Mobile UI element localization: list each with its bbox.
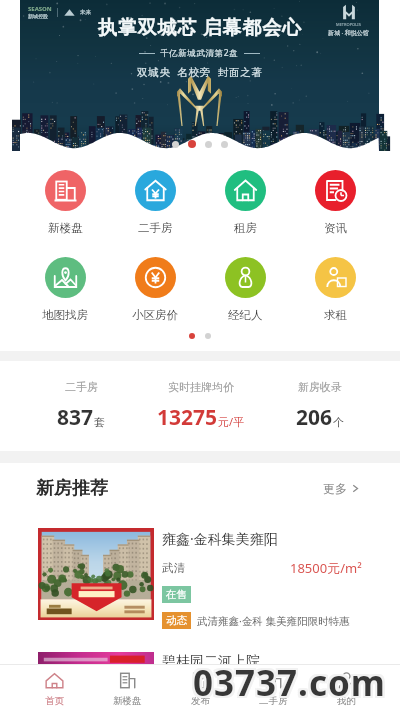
staticText: 03737.com <box>193 661 386 709</box>
staticText: 新房推荐 <box>36 477 108 500</box>
staticText: 新楼盘 <box>48 221 83 235</box>
staticText: 03737.com <box>194 658 387 706</box>
staticText: 03737.com <box>192 658 385 706</box>
staticText: 03737.com <box>195 657 388 705</box>
button[interactable]: 雍鑫·金科集美雍阳 <box>0 528 400 652</box>
staticText: 03737.com <box>191 661 384 709</box>
staticText: 求租 <box>324 308 347 322</box>
staticText: 执掌双城芯 启幕都会心 <box>98 14 302 40</box>
staticText: 首页 <box>45 695 64 707</box>
button[interactable]: 租房 <box>200 170 290 235</box>
staticText: 新楼盘 <box>113 695 142 707</box>
staticText: 新房收录 <box>298 380 342 394</box>
staticText: 千亿新城武清第2盘 <box>160 47 239 59</box>
staticText: 未来 <box>80 9 91 16</box>
staticText: 16000元/m² <box>290 682 362 688</box>
button[interactable]: 碧桂园二河上院 <box>0 652 400 711</box>
button[interactable]: 求租 <box>290 257 380 322</box>
staticText: 个 <box>333 415 344 429</box>
staticText: 03737.com <box>193 659 386 707</box>
button[interactable]: 小区房价 <box>110 257 200 322</box>
staticText: 更多 <box>323 481 347 496</box>
staticText: 地图找房 <box>42 308 88 322</box>
staticText: 二手房 <box>138 221 173 235</box>
staticText: 租房 <box>234 221 257 235</box>
staticText: 二手房 <box>65 380 98 394</box>
staticText: 双城央 名校旁 封面之著 <box>137 65 263 79</box>
staticText: 206 <box>296 403 333 432</box>
staticText: 发布 <box>191 695 210 707</box>
staticText: 03737.com <box>192 660 385 708</box>
staticText: METROPOLIS <box>336 22 361 27</box>
staticText: 武清 <box>162 561 185 575</box>
button[interactable]: 地图找房 <box>20 257 110 322</box>
button[interactable]: 二手房 <box>237 664 310 711</box>
staticText: 03737.com <box>191 659 384 707</box>
button[interactable]: 首页 <box>17 664 91 711</box>
button[interactable]: 发布 <box>164 664 237 711</box>
staticText: 实时挂牌均价 <box>168 380 234 394</box>
button[interactable]: 执掌双城芯 启幕都会心 <box>20 0 379 151</box>
button[interactable]: 新房收录 <box>260 380 379 432</box>
staticText: 动态 <box>166 614 187 627</box>
staticText: 03737.com <box>193 657 386 705</box>
button[interactable]: 经纪人 <box>200 257 290 322</box>
button[interactable]: 我的 <box>310 664 383 711</box>
staticText: 837 <box>57 403 94 432</box>
staticText: 03737.com <box>191 657 384 705</box>
button[interactable]: 新楼盘 <box>91 664 164 711</box>
button[interactable]: 二手房 <box>21 380 141 432</box>
staticText: 在售 <box>166 588 187 601</box>
button[interactable]: 实时挂牌均价 <box>141 380 260 432</box>
button[interactable]: 二手房 <box>110 170 200 235</box>
staticText: 套 <box>94 415 105 429</box>
staticText: 新城控股 <box>28 13 48 19</box>
staticText: 03737.com <box>194 660 387 708</box>
staticText: 经纪人 <box>228 308 263 322</box>
staticText: 03737.com <box>195 659 388 707</box>
staticText: 碧桂园二河上院 <box>162 653 260 671</box>
staticText: 雍鑫·金科集美雍阳 <box>162 529 278 548</box>
staticText: 18500元/m² <box>290 559 362 577</box>
staticText: 资讯 <box>324 221 347 235</box>
staticText: 二手房 <box>259 695 288 707</box>
button[interactable]: 新楼盘 <box>20 170 110 235</box>
staticText: 武清雍鑫·金科 集美雍阳限时特惠 <box>197 614 350 628</box>
staticText: 小区房价 <box>132 308 178 322</box>
button[interactable]: 更多 <box>323 481 360 496</box>
staticText: 13275 <box>157 403 218 432</box>
staticText: 我的 <box>337 695 356 707</box>
staticText: SEASON <box>28 5 52 13</box>
staticText: 03737.com <box>195 661 388 709</box>
button[interactable]: 资讯 <box>290 170 380 235</box>
staticText: 新城 · 和悦公馆 <box>328 29 369 37</box>
staticText: 元/平 <box>218 414 245 429</box>
